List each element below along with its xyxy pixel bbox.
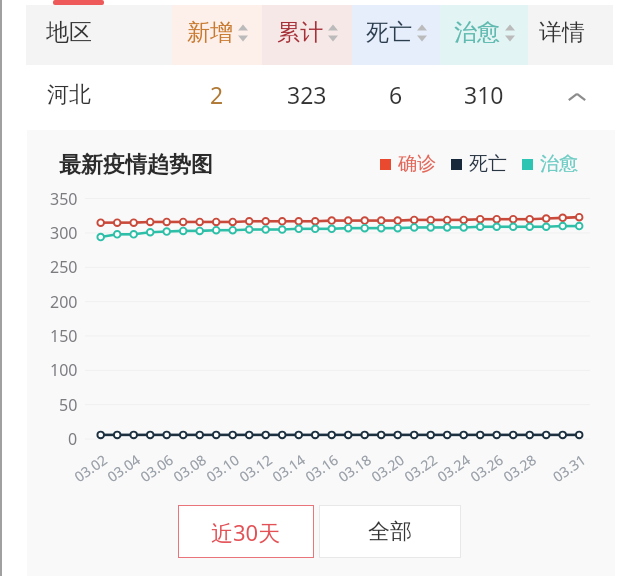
button[interactable]: 近30天 xyxy=(178,505,314,558)
staticText: 全部 xyxy=(368,518,412,546)
staticText: 确诊 xyxy=(398,152,436,176)
staticText: 河北 xyxy=(47,81,91,109)
button[interactable]: Collapse xyxy=(528,65,613,130)
staticText: 死亡 xyxy=(366,18,412,47)
staticText: 310 xyxy=(464,79,504,110)
staticText: 治愈 xyxy=(540,152,578,176)
staticText: 近30天 xyxy=(211,517,281,547)
button[interactable]: 地区 xyxy=(26,5,172,65)
button[interactable]: 治愈 xyxy=(440,5,528,65)
staticText: 6 xyxy=(389,79,403,110)
staticText: 地区 xyxy=(46,18,92,47)
staticText: 最新疫情趋势图 xyxy=(59,151,213,179)
button[interactable]: 累计 xyxy=(262,5,352,65)
staticText: 死亡 xyxy=(469,152,507,176)
staticText: 2 xyxy=(210,79,224,110)
staticText: 新增 xyxy=(187,18,233,47)
staticText: 323 xyxy=(287,79,327,110)
button[interactable]: 全部 xyxy=(319,505,461,558)
button[interactable]: 详情 xyxy=(528,5,613,65)
staticText: 详情 xyxy=(539,18,585,47)
staticText: 治愈 xyxy=(454,18,500,47)
button[interactable]: 死亡 xyxy=(352,5,440,65)
button[interactable]: 河北 xyxy=(26,65,613,130)
staticText: 累计 xyxy=(277,18,323,47)
button[interactable]: 新增 xyxy=(172,5,262,65)
